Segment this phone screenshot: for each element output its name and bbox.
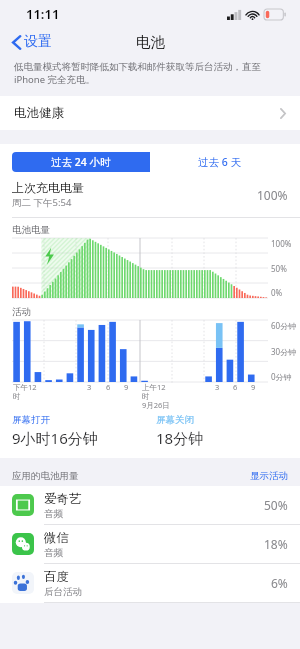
staticText: 0分钟 bbox=[271, 371, 292, 382]
staticText: 百度 bbox=[44, 569, 69, 585]
staticText: 屏幕打开 bbox=[12, 414, 50, 426]
staticText: 50% bbox=[271, 263, 287, 274]
staticText: 上午12 时 9月26日 bbox=[142, 382, 170, 410]
staticText: 下午12 时 bbox=[13, 382, 37, 401]
staticText: 9 bbox=[124, 382, 129, 392]
staticText: 显示活动 bbox=[250, 470, 288, 482]
staticText: 100% bbox=[257, 187, 288, 203]
staticText: 应用的电池用量 bbox=[12, 470, 79, 482]
staticText: 30分钟 bbox=[271, 346, 297, 357]
staticText: 电池健康 bbox=[14, 105, 64, 121]
staticText: 微信 bbox=[44, 530, 69, 546]
staticText: 6 bbox=[233, 382, 238, 392]
button[interactable]: 微信 bbox=[0, 525, 300, 564]
button[interactable]: 过去 24 小时 bbox=[12, 152, 150, 172]
staticText: 60分钟 bbox=[271, 320, 297, 331]
staticText: 9小时16分钟 bbox=[12, 428, 98, 448]
button[interactable]: 显示活动 bbox=[250, 470, 288, 482]
staticText: 音频 bbox=[44, 508, 63, 520]
staticText: 50% bbox=[264, 497, 288, 513]
staticText: 电池电量 bbox=[12, 224, 50, 236]
button[interactable]: 设置 bbox=[8, 30, 56, 54]
staticText: 屏幕关闭 bbox=[156, 414, 194, 426]
button[interactable]: 电池健康 bbox=[0, 96, 300, 130]
staticText: 设置 bbox=[24, 33, 52, 51]
button[interactable]: 爱奇艺 bbox=[0, 486, 300, 525]
staticText: 9 bbox=[251, 382, 256, 392]
button[interactable]: 百度 bbox=[0, 564, 300, 603]
staticText: 18分钟 bbox=[156, 428, 204, 448]
staticText: 电池 bbox=[136, 33, 165, 51]
staticText: 3 bbox=[87, 382, 92, 392]
button[interactable]: 过去 6 天 bbox=[150, 152, 288, 172]
staticText: 后台活动 bbox=[44, 586, 82, 598]
staticText: 6% bbox=[271, 575, 288, 591]
staticText: 音频 bbox=[44, 547, 63, 559]
staticText: 上次充电电量 bbox=[12, 180, 84, 195]
staticText: 爱奇艺 bbox=[44, 491, 82, 507]
staticText: 低电量模式将暂时降低如下载和邮件获取等后台活动，直至 iPhone 完全充电。 bbox=[14, 60, 286, 86]
staticText: 11:11 bbox=[26, 5, 60, 23]
staticText: 0% bbox=[271, 287, 283, 298]
staticText: 周二 下午5:54 bbox=[12, 196, 72, 209]
staticText: 100% bbox=[271, 238, 292, 249]
staticText: 18% bbox=[264, 536, 288, 552]
staticText: 3 bbox=[215, 382, 220, 392]
staticText: 过去 24 小时 bbox=[51, 155, 111, 169]
staticText: 6 bbox=[106, 382, 111, 392]
staticText: 过去 6 天 bbox=[198, 155, 241, 169]
staticText: 活动 bbox=[12, 306, 31, 318]
